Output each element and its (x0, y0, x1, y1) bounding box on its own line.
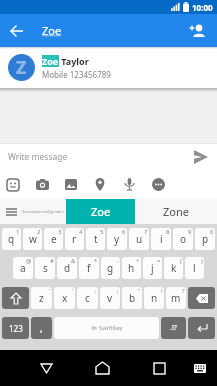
button[interactable] (2, 287, 29, 309)
button[interactable] (0, 199, 22, 224)
staticText: " (138, 287, 141, 295)
staticText: = (157, 257, 161, 265)
staticText: : (95, 287, 97, 295)
button[interactable]: d (57, 257, 77, 279)
staticText: c (85, 291, 90, 305)
staticText: ? (182, 287, 185, 295)
staticText: n (151, 291, 158, 305)
button[interactable] (177, 14, 217, 47)
staticText: 1 (16, 228, 20, 236)
button[interactable]: v (100, 287, 120, 309)
button[interactable]: i (151, 228, 171, 250)
staticText: q (8, 232, 15, 246)
staticText: Zoe (42, 55, 59, 67)
button[interactable]: o (173, 228, 193, 250)
staticText: z (39, 291, 44, 305)
button[interactable]: y (107, 228, 127, 250)
button[interactable]: m (166, 287, 186, 309)
button[interactable]: t (86, 228, 105, 250)
button[interactable]: Zoe (66, 199, 135, 224)
staticText: 5 (100, 228, 104, 236)
staticText: .!? (170, 323, 177, 333)
button[interactable] (87, 170, 113, 199)
button[interactable]: l (185, 257, 204, 279)
button[interactable]: q (2, 228, 21, 250)
staticText: ( (180, 257, 182, 265)
button[interactable] (0, 170, 26, 199)
staticText: Zone (163, 204, 189, 219)
button[interactable] (84, 350, 120, 386)
staticText: 8 (166, 228, 170, 236)
button[interactable]: e (44, 228, 63, 250)
button[interactable] (188, 287, 215, 309)
staticText: 9 (188, 228, 192, 236)
button[interactable]: j (143, 257, 162, 279)
staticText: w (29, 232, 37, 246)
staticText: x (62, 291, 68, 305)
button[interactable]: Write message (0, 144, 217, 170)
staticText: # (50, 257, 54, 265)
staticText: i (160, 232, 163, 246)
staticText: b (129, 291, 136, 305)
staticText: m (171, 291, 181, 305)
staticText: k (171, 261, 177, 275)
button[interactable]: .!? (161, 317, 186, 339)
button[interactable] (141, 350, 177, 386)
button[interactable]: Zone (135, 199, 217, 224)
button[interactable]: s (35, 257, 55, 279)
staticText: - (117, 257, 119, 265)
button[interactable]: n (144, 287, 164, 309)
staticText: ≫ SwiftKey (91, 324, 123, 332)
staticText: Z (16, 55, 27, 80)
button[interactable]: Z (0, 47, 217, 88)
button[interactable]: p (195, 228, 215, 250)
button[interactable]: x (54, 287, 75, 309)
staticText: Mobile 123456789 (42, 69, 111, 80)
button[interactable] (29, 170, 55, 199)
button[interactable] (185, 350, 215, 386)
staticText: y (114, 232, 120, 246)
staticText: s (43, 261, 48, 275)
button[interactable]: k (164, 257, 183, 279)
button[interactable]: 123 (2, 317, 29, 339)
button[interactable]: f (79, 257, 99, 279)
button[interactable] (28, 350, 64, 386)
button[interactable]: g (101, 257, 120, 279)
staticText: Zoe (42, 23, 62, 38)
button[interactable] (0, 14, 33, 47)
button[interactable]: ≫ SwiftKey (54, 317, 159, 339)
staticText: 2 (37, 228, 41, 236)
staticText: l (193, 261, 196, 275)
button[interactable]: Zoe (42, 23, 177, 38)
staticText: 0 (210, 228, 214, 236)
button[interactable]: b (122, 287, 142, 309)
staticText: ; (117, 287, 119, 295)
staticText: ! (161, 287, 163, 295)
staticText: d (64, 261, 71, 275)
staticText: 4 (79, 228, 83, 236)
button[interactable] (145, 170, 171, 199)
button[interactable] (58, 170, 84, 199)
staticText: ` (49, 287, 51, 295)
button[interactable]: a (13, 257, 33, 279)
button[interactable]: c (77, 287, 98, 309)
button[interactable]: , (31, 317, 52, 339)
staticText: 3 (58, 228, 62, 236)
button[interactable]: u (129, 228, 149, 250)
button[interactable]: h (122, 257, 141, 279)
staticText: f (87, 261, 91, 275)
button[interactable] (188, 317, 215, 339)
button[interactable] (191, 147, 211, 167)
staticText: Zoe.taylor.xm@gmail.com (22, 209, 66, 214)
staticText: Write message (8, 151, 191, 163)
button[interactable]: r (65, 228, 84, 250)
button[interactable]: z (31, 287, 52, 309)
staticText: p (202, 232, 209, 246)
staticText: t (94, 232, 98, 246)
button[interactable] (116, 170, 142, 199)
staticText: a (20, 261, 26, 275)
button[interactable]: w (23, 228, 42, 250)
staticText: j (151, 261, 154, 275)
staticText: Taylor (59, 55, 89, 67)
staticText: 123 (9, 323, 23, 334)
